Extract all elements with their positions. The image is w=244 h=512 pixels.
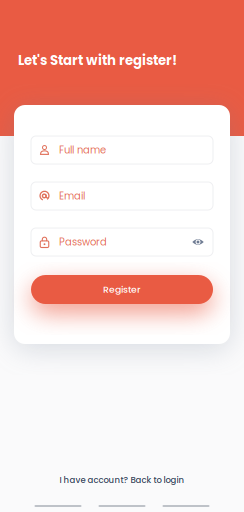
button[interactable]: Register xyxy=(31,275,213,304)
button[interactable]: Show password xyxy=(186,238,204,246)
button[interactable]: I have account? Back to login xyxy=(49,469,194,491)
staticText: Let's Start with register! xyxy=(18,51,177,70)
staticText: Password xyxy=(59,235,107,249)
staticText: Register xyxy=(103,283,141,296)
staticText: Full name xyxy=(59,143,106,157)
staticText: Email xyxy=(59,189,85,203)
staticText: I have account? Back to login xyxy=(59,474,184,486)
